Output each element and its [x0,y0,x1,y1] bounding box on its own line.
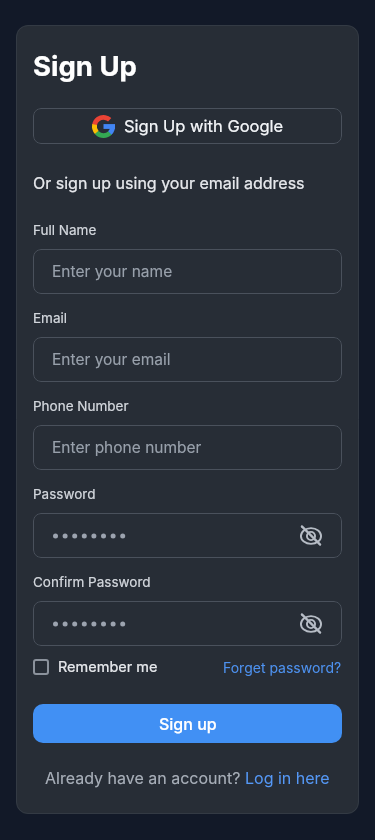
button[interactable] [295,520,327,552]
button[interactable]: Sign up [33,704,342,743]
staticText: Remember me [58,658,158,676]
button[interactable]: Sign Up with Google [33,108,342,144]
staticText: Confirm Password [33,574,151,590]
button[interactable]: Forget password? [223,659,342,676]
staticText: Enter your name [52,262,173,281]
button[interactable] [33,513,342,558]
staticText: Forget password? [223,659,342,676]
button[interactable]: Enter your email [33,337,342,382]
staticText: Enter your email [52,350,171,369]
staticText: Sign up [159,714,217,733]
staticText: Password [33,486,96,502]
button[interactable]: Enter your name [33,249,342,294]
button[interactable]: Log in here [245,768,330,787]
staticText: Log in here [245,768,330,787]
staticText: Sign Up [33,49,137,82]
staticText: Already have an account? [45,768,245,787]
button[interactable] [33,601,342,646]
staticText: Or sign up using your email address [33,173,305,192]
button[interactable]: Enter phone number [33,425,342,470]
staticText: Enter phone number [52,438,202,457]
button[interactable]: Remember me [33,658,158,676]
staticText: Full Name [33,222,97,238]
staticText: Email [33,310,68,326]
staticText: Sign Up with Google [124,116,284,136]
button[interactable] [295,608,327,640]
staticText: Phone Number [33,398,129,414]
